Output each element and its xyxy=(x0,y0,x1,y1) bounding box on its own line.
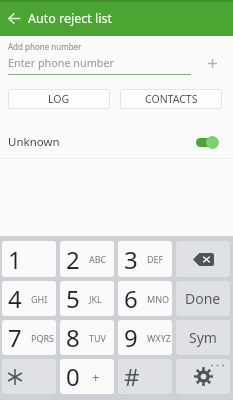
staticText: Auto reject list xyxy=(28,10,112,27)
staticText: JKL xyxy=(89,293,102,305)
staticText: DEF xyxy=(147,253,164,265)
staticText: Done xyxy=(185,289,221,308)
staticText: Unknown xyxy=(8,134,60,150)
staticText: 9 xyxy=(124,321,138,354)
staticText: Sym xyxy=(189,328,217,347)
button[interactable] xyxy=(176,241,230,277)
staticText: WXYZ xyxy=(147,332,171,344)
staticText: 7 xyxy=(8,321,22,354)
button[interactable]: 2 xyxy=(60,241,114,277)
staticText: + xyxy=(92,368,100,386)
button[interactable]: 4 xyxy=(2,281,56,316)
button[interactable]: 1 xyxy=(2,241,56,277)
button[interactable]: 0 xyxy=(60,359,114,394)
staticText: Enter phone number xyxy=(8,55,114,70)
button[interactable]: Keyboard settings xyxy=(176,359,230,394)
staticText: # xyxy=(124,360,140,393)
staticText: 8 xyxy=(66,321,80,354)
staticText: 5 xyxy=(66,282,80,315)
button[interactable]: Add contact xyxy=(201,53,223,73)
staticText: PQRS xyxy=(31,332,55,344)
button[interactable]: 5 xyxy=(60,281,114,316)
staticText: GHI xyxy=(31,293,48,305)
other: Keyboard settings xyxy=(176,359,230,394)
button[interactable]: Sym xyxy=(176,320,230,355)
button[interactable]: # xyxy=(118,359,172,394)
button[interactable]: CONTACTS xyxy=(120,89,222,109)
staticText: MNO xyxy=(147,293,170,305)
button[interactable]: 3 xyxy=(118,241,172,277)
button[interactable]: LOG xyxy=(8,89,110,109)
button[interactable] xyxy=(2,359,56,394)
staticText: 2 xyxy=(66,243,80,276)
staticText: 1 xyxy=(8,243,22,276)
staticText: LOG xyxy=(48,92,70,106)
button[interactable]: Unknown toggle xyxy=(195,134,220,150)
staticText: 3 xyxy=(124,243,138,276)
button[interactable]: 6 xyxy=(118,281,172,316)
staticText: TUV xyxy=(89,332,106,344)
button[interactable]: Back xyxy=(0,2,28,36)
staticText: 4 xyxy=(8,282,22,315)
staticText: CONTACTS xyxy=(145,92,198,106)
button[interactable]: 7 xyxy=(2,320,56,355)
staticText: ABC xyxy=(89,253,107,265)
button[interactable]: 9 xyxy=(118,320,172,355)
staticText: 0 xyxy=(66,360,80,393)
staticText: Add phone number xyxy=(8,41,82,52)
staticText: 6 xyxy=(124,282,138,315)
button[interactable]: Unknown xyxy=(0,126,233,158)
button[interactable]: 8 xyxy=(60,320,114,355)
button[interactable]: Done xyxy=(176,281,230,316)
